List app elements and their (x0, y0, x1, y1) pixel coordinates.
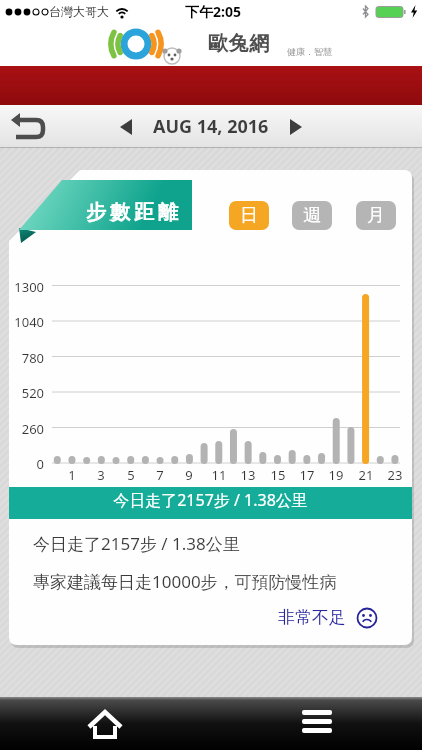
button[interactable] (10, 110, 50, 144)
staticText: 7 (148, 466, 172, 484)
staticText: 步數距離 (84, 200, 180, 225)
staticText: 非常不足 (278, 607, 346, 628)
staticText: 260 (6, 420, 44, 438)
staticText: 1040 (6, 313, 44, 331)
staticText: 今日走了2157步 / 1.38公里 (9, 489, 412, 511)
staticText: 健康．智慧 (287, 46, 332, 57)
staticText: 5 (119, 466, 143, 484)
button[interactable] (116, 115, 140, 139)
staticText: 15 (266, 466, 290, 484)
staticText: 23 (383, 466, 407, 484)
button[interactable] (282, 115, 306, 139)
staticText: 13 (236, 466, 260, 484)
staticText: 月 (367, 204, 385, 227)
staticText: 21 (354, 466, 378, 484)
staticText: 3 (89, 466, 113, 484)
staticText: 520 (6, 384, 44, 402)
staticText: AUG 14, 2016 (153, 114, 269, 139)
staticText: 週 (303, 204, 321, 227)
staticText: 今日走了2157步 / 1.38公里 (33, 532, 240, 555)
button[interactable] (295, 702, 339, 746)
staticText: 下午2:05 (185, 2, 241, 21)
staticText: 17 (295, 466, 319, 484)
staticText: 11 (207, 466, 231, 484)
button[interactable]: 月 (356, 201, 396, 230)
staticText: 專家建議每日走10000步，可預防慢性病 (33, 570, 337, 593)
staticText: 780 (6, 349, 44, 367)
staticText: 0 (6, 455, 44, 473)
staticText: 1300 (6, 278, 44, 296)
button[interactable]: 日 (229, 201, 269, 230)
staticText: 9 (177, 466, 201, 484)
staticText: 歐兔網 (208, 31, 270, 56)
staticText: 台灣大哥大 (49, 4, 109, 19)
button[interactable]: 週 (292, 201, 332, 230)
staticText: 日 (240, 204, 258, 227)
staticText: 1 (60, 466, 84, 484)
staticText: 19 (324, 466, 348, 484)
button[interactable] (83, 702, 127, 746)
